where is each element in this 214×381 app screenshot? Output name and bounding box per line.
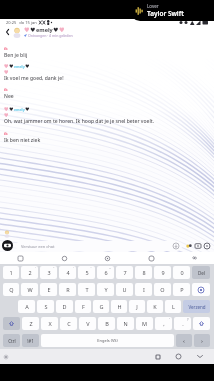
button[interactable]: C	[60, 317, 77, 330]
staticText: Q	[9, 286, 14, 293]
staticText: ♥	[59, 26, 65, 33]
staticText: 9	[161, 269, 165, 276]
button[interactable]: Back	[2, 27, 12, 37]
button[interactable]: S	[37, 300, 54, 313]
staticText: L	[172, 303, 175, 310]
button[interactable]: Recent apps	[152, 351, 163, 362]
button[interactable]: 6	[97, 266, 114, 279]
button[interactable]: A	[18, 300, 35, 313]
staticText: ›	[201, 337, 203, 345]
button[interactable]: I	[135, 283, 152, 296]
button[interactable]: G	[93, 300, 109, 313]
staticText: emely	[14, 64, 25, 69]
button[interactable]: X	[41, 317, 58, 330]
button[interactable]: 9	[154, 266, 171, 279]
staticText: 1	[9, 269, 13, 276]
staticText: 0	[180, 269, 184, 276]
button[interactable]: Lover	[130, 0, 214, 21]
button[interactable]: Chat	[14, 252, 26, 264]
staticText: B	[105, 320, 109, 327]
staticText: ´	[35, 266, 36, 271]
button[interactable]: V	[79, 317, 96, 330]
button[interactable]: K	[147, 300, 163, 313]
staticText: V	[86, 320, 90, 327]
button[interactable]: H	[111, 300, 127, 313]
staticText: 4	[66, 269, 70, 276]
button[interactable]: Home	[173, 351, 184, 362]
button[interactable]: J	[129, 300, 145, 313]
button[interactable]: Keyboard switch	[2, 353, 10, 361]
button[interactable]: Media	[193, 241, 202, 250]
button[interactable]: .	[174, 317, 191, 330]
button[interactable]: Friends	[188, 252, 200, 264]
button[interactable]: 8	[135, 266, 152, 279]
button[interactable]: Z	[22, 317, 39, 330]
button[interactable]: T	[78, 283, 95, 296]
button[interactable]: P	[173, 283, 190, 296]
button[interactable]: W	[21, 283, 38, 296]
staticText: C	[67, 320, 71, 327]
button[interactable]: 4	[59, 266, 76, 279]
button[interactable]: O	[154, 283, 171, 296]
button[interactable]: ,	[155, 317, 172, 330]
button[interactable]: Games	[145, 252, 157, 264]
button[interactable]: L	[165, 300, 181, 313]
button[interactable]: 2	[21, 266, 38, 279]
staticText: ‹	[183, 337, 185, 345]
button[interactable]: 5	[78, 266, 95, 279]
staticText: 6	[104, 269, 108, 276]
button[interactable]: ‹	[176, 334, 192, 347]
button[interactable]: 1	[3, 266, 19, 279]
button[interactable]: 3	[40, 266, 57, 279]
staticText: ˆ	[53, 266, 55, 271]
button[interactable]: Y	[97, 283, 114, 296]
button[interactable]: Verzend	[183, 300, 210, 313]
staticText: !#1	[27, 338, 34, 344]
staticText: ♥	[4, 69, 9, 75]
button[interactable]: Video	[101, 252, 113, 264]
button[interactable]: R	[59, 283, 76, 296]
staticText: ik	[4, 46, 8, 51]
button[interactable]: Verstuur een chat	[16, 241, 182, 251]
button[interactable]: Bitmoji sticker	[184, 241, 193, 250]
staticText: Verzend	[188, 304, 206, 310]
button[interactable]: 7	[116, 266, 133, 279]
button[interactable]: N	[117, 317, 134, 330]
button[interactable]: E	[40, 283, 57, 296]
staticText: Del	[198, 270, 205, 276]
button[interactable]: U	[116, 283, 133, 296]
staticText: H	[117, 303, 122, 310]
staticText: Y	[104, 286, 108, 293]
button[interactable]: !#1	[22, 334, 39, 347]
button[interactable]: ›	[194, 334, 210, 347]
button[interactable]: Ctrl	[3, 334, 20, 347]
staticText: ♥	[53, 26, 59, 33]
button[interactable]: B	[98, 317, 115, 330]
button[interactable]: Back	[194, 351, 205, 362]
staticText: F	[82, 303, 85, 310]
staticText: P	[180, 286, 184, 293]
button[interactable]: 0	[173, 266, 190, 279]
staticText: ik	[4, 131, 8, 136]
button[interactable]: More options	[202, 241, 211, 250]
staticText: `	[73, 266, 74, 271]
button[interactable]: M	[136, 317, 153, 330]
button[interactable]: Del	[192, 266, 210, 279]
staticText: R	[66, 286, 70, 293]
button[interactable]: Engels (VS)	[41, 334, 174, 347]
button[interactable]: D	[56, 300, 73, 313]
button[interactable]: Call	[58, 252, 70, 264]
button[interactable]: Q	[3, 283, 19, 296]
staticText: Ben je blij	[4, 52, 28, 59]
staticText: ♥	[9, 106, 14, 112]
button[interactable]: Shift right	[193, 317, 210, 330]
button[interactable]: F	[75, 300, 91, 313]
staticText: G	[99, 303, 104, 310]
staticText: ♥	[24, 26, 30, 33]
staticText: 7	[123, 269, 127, 276]
staticText: Ik voel me goed, dank je!	[4, 75, 64, 82]
button[interactable]: Shift	[3, 317, 20, 330]
button[interactable]: Camera	[2, 240, 13, 251]
button[interactable]: Show password	[192, 283, 210, 296]
staticText: X	[48, 320, 52, 327]
